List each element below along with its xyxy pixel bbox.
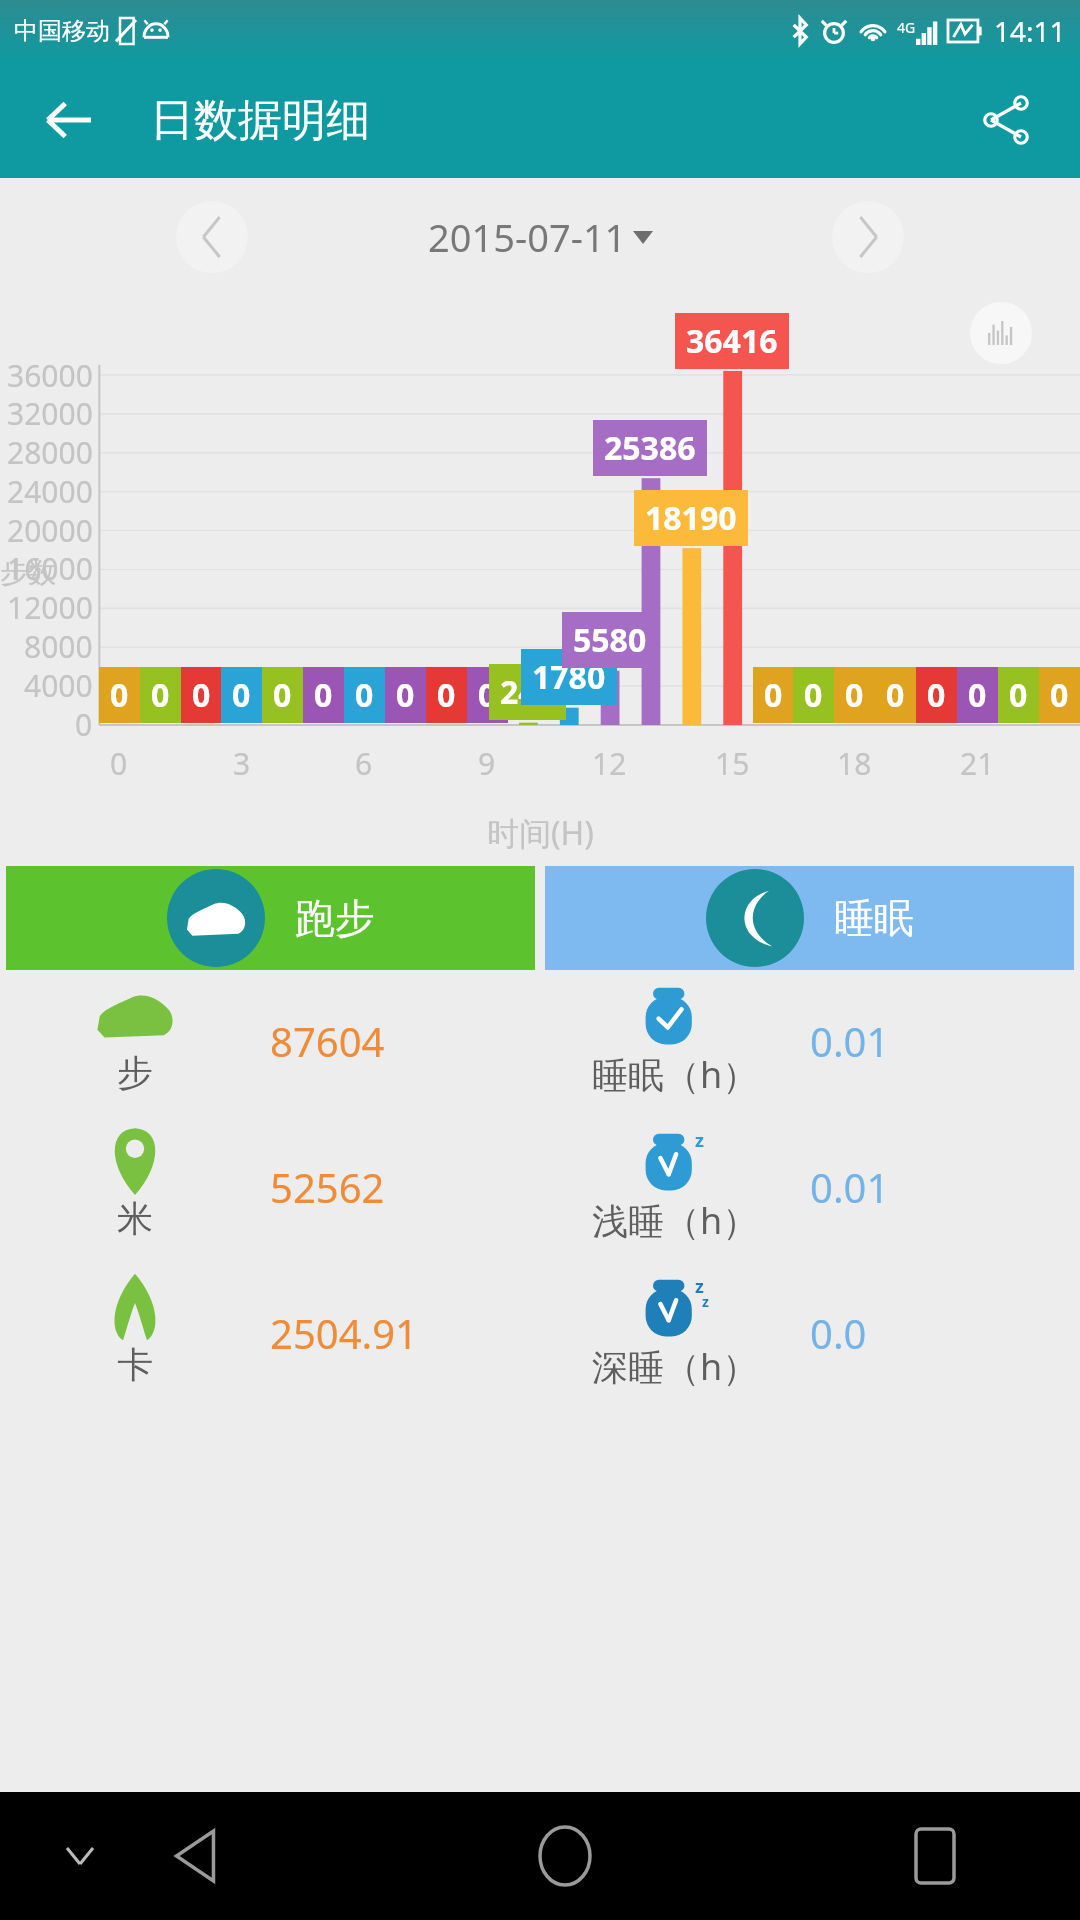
button[interactable]: 米 xyxy=(0,1116,540,1262)
staticText: z xyxy=(695,1274,704,1299)
staticText: 32000 xyxy=(7,393,93,434)
staticText: 18 xyxy=(837,743,872,784)
staticText: 8000 xyxy=(24,626,93,667)
staticText: 0.01 xyxy=(810,1160,890,1214)
staticText: 日数据明细 xyxy=(150,93,370,148)
button[interactable]: z xyxy=(540,1116,1080,1262)
staticText: 87604 xyxy=(270,1014,385,1068)
button[interactable]: Back xyxy=(32,84,104,156)
staticText: 睡眠（h） xyxy=(592,1050,759,1099)
staticText: 24000 xyxy=(7,471,93,512)
staticText: 5580 xyxy=(573,618,647,662)
staticText: 0 xyxy=(764,673,783,717)
staticText: 0 xyxy=(927,673,946,717)
button[interactable]: 步 xyxy=(0,970,540,1116)
staticText: 25386 xyxy=(604,426,696,470)
staticText: 28000 xyxy=(7,432,93,473)
staticText: 0 xyxy=(192,673,211,717)
staticText: 36416 xyxy=(686,319,778,363)
staticText: 中国移动 xyxy=(14,16,110,46)
staticText: 0 xyxy=(437,673,456,717)
staticText: 时间(H) xyxy=(487,811,594,855)
staticText: 9 xyxy=(478,743,496,784)
staticText: 52562 xyxy=(270,1160,385,1214)
staticText: 14:11 xyxy=(994,12,1066,50)
staticText: 36000 xyxy=(7,355,93,396)
staticText: 跑步 xyxy=(295,893,375,943)
button[interactable]: z xyxy=(540,1262,1080,1408)
staticText: 米 xyxy=(117,1196,153,1241)
staticText: 0 xyxy=(110,673,129,717)
button[interactable]: 卡 xyxy=(0,1262,540,1408)
staticText: 步 xyxy=(117,1050,153,1095)
staticText: 20000 xyxy=(7,510,93,551)
staticText: 18190 xyxy=(645,496,737,540)
staticText: z xyxy=(702,1292,709,1311)
button[interactable]: 2015-07-11 xyxy=(428,211,653,263)
staticText: 深睡（h） xyxy=(592,1342,759,1391)
staticText: 0 xyxy=(314,673,333,717)
button[interactable]: 跑步 xyxy=(6,866,535,970)
button[interactable]: Previous day xyxy=(176,201,248,273)
button[interactable]: 睡眠（h） xyxy=(540,970,1080,1116)
button[interactable]: Hide xyxy=(44,1820,116,1892)
button[interactable]: Next day xyxy=(832,201,904,273)
staticText: 16000 xyxy=(7,548,93,589)
staticText: 21 xyxy=(960,743,995,784)
staticText: 0 xyxy=(396,673,415,717)
staticText: 4G xyxy=(897,18,916,37)
staticText: 0 xyxy=(273,673,292,717)
staticText: 2015-07-11 xyxy=(428,211,627,263)
button[interactable]: Recents xyxy=(890,1811,980,1901)
staticText: 步数 xyxy=(0,555,56,590)
staticText: 242 xyxy=(500,670,555,714)
staticText: 0 xyxy=(1009,673,1028,717)
staticText: 0 xyxy=(478,673,497,717)
button[interactable]: Share xyxy=(968,82,1044,158)
staticText: 12 xyxy=(592,743,627,784)
staticText: 0 xyxy=(886,673,905,717)
staticText: 6 xyxy=(355,743,373,784)
button[interactable]: Back xyxy=(150,1811,240,1901)
staticText: 浅睡（h） xyxy=(592,1196,759,1245)
button[interactable]: Chart type xyxy=(970,302,1032,364)
staticText: 0 xyxy=(110,743,128,784)
staticText: 2504.91 xyxy=(270,1306,418,1360)
staticText: 0.01 xyxy=(810,1014,890,1068)
staticText: 0 xyxy=(1050,673,1069,717)
staticText: 0 xyxy=(75,704,93,745)
staticText: 0.0 xyxy=(810,1306,867,1360)
staticText: 0 xyxy=(845,673,864,717)
button[interactable]: Home xyxy=(520,1811,610,1901)
staticText: 3 xyxy=(233,743,251,784)
staticText: 0 xyxy=(151,673,170,717)
staticText: 0 xyxy=(355,673,374,717)
staticText: 0 xyxy=(232,673,251,717)
staticText: 卡 xyxy=(117,1342,153,1387)
staticText: 睡眠 xyxy=(834,893,914,943)
staticText: 15 xyxy=(715,743,750,784)
staticText: 4000 xyxy=(24,665,93,706)
staticText: z xyxy=(695,1128,704,1153)
staticText: 0 xyxy=(968,673,987,717)
staticText: 12000 xyxy=(7,587,93,628)
staticText: 0 xyxy=(804,673,823,717)
button[interactable]: 睡眠 xyxy=(545,866,1074,970)
staticText: 1780 xyxy=(532,655,606,699)
